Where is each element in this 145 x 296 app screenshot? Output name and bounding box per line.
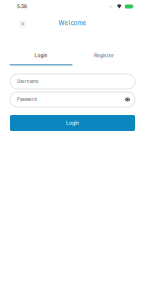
staticText: Username [17, 79, 39, 84]
button[interactable]: Login [10, 115, 135, 131]
staticText: 5:36 [17, 4, 27, 9]
button[interactable]: Login [9, 50, 72, 64]
staticText: Login [66, 120, 79, 126]
staticText: Welcome [58, 19, 86, 27]
button[interactable]: Close [15, 16, 31, 32]
staticText: Password [17, 97, 37, 102]
staticText: Register [94, 53, 114, 58]
staticText: Login [34, 53, 47, 58]
button[interactable]: Register [72, 50, 135, 64]
